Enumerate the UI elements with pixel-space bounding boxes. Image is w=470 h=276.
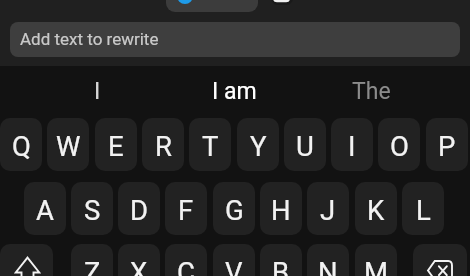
staticText: J	[320, 194, 336, 226]
button[interactable]: X	[118, 244, 160, 276]
button[interactable]: C	[165, 244, 207, 276]
staticText: C	[177, 256, 195, 276]
button[interactable]: M	[355, 244, 397, 276]
button[interactable]: D	[118, 182, 160, 235]
button[interactable]: The	[309, 65, 433, 117]
button[interactable]: I	[35, 65, 159, 117]
button[interactable]: I am	[172, 65, 296, 117]
staticText: Z	[84, 256, 101, 276]
staticText: Add text to rewrite	[20, 29, 159, 49]
staticText: G	[225, 194, 244, 226]
button[interactable]: K	[355, 182, 397, 235]
staticText: W	[56, 130, 81, 162]
staticText: N	[318, 256, 338, 276]
button[interactable]: E	[95, 118, 137, 171]
staticText: H	[271, 194, 291, 226]
staticText: L	[416, 194, 431, 226]
button[interactable]: J	[307, 182, 349, 235]
button[interactable]: A	[24, 182, 66, 235]
button[interactable]: L	[402, 182, 444, 235]
button[interactable]: S	[71, 182, 113, 235]
staticText: I am	[212, 78, 257, 105]
button[interactable]: More options	[271, 0, 293, 5]
staticText: E	[108, 130, 124, 162]
button[interactable]: T	[189, 118, 231, 171]
button[interactable]: G	[213, 182, 255, 235]
button[interactable]: N	[307, 244, 349, 276]
button[interactable]: W	[47, 118, 89, 171]
staticText: Y	[250, 130, 267, 162]
button[interactable]: U	[284, 118, 326, 171]
button[interactable]: Z	[71, 244, 113, 276]
button[interactable]: B	[260, 244, 302, 276]
button[interactable]: V	[213, 244, 255, 276]
staticText: M	[364, 256, 389, 276]
staticText: R	[155, 130, 172, 162]
staticText: T	[202, 130, 219, 162]
staticText: I	[94, 78, 101, 105]
button[interactable]: F	[165, 182, 207, 235]
staticText: B	[272, 256, 290, 276]
button[interactable]: H	[260, 182, 302, 235]
button[interactable]: R	[142, 118, 184, 171]
button[interactable]: P	[426, 118, 468, 171]
button[interactable]: Backspace	[413, 244, 467, 276]
staticText: U	[296, 130, 314, 162]
button[interactable]: O	[378, 118, 420, 171]
staticText: X	[130, 256, 148, 276]
staticText: S	[84, 194, 101, 226]
staticText: A	[36, 194, 54, 226]
staticText: The	[352, 78, 391, 105]
staticText: P	[438, 130, 456, 162]
button[interactable]: Shift	[0, 244, 53, 276]
button[interactable]: Q	[0, 118, 42, 171]
button[interactable]: Add text to rewrite	[10, 22, 460, 57]
staticText: O	[390, 130, 409, 162]
staticText: K	[367, 194, 385, 226]
staticText: I	[348, 130, 356, 162]
staticText: D	[130, 194, 149, 226]
button[interactable]: Y	[237, 118, 279, 171]
staticText: V	[225, 256, 243, 276]
button[interactable]: Rewrite style	[166, 0, 258, 12]
staticText: F	[178, 194, 194, 226]
staticText: Q	[12, 130, 31, 162]
button[interactable]: I	[331, 118, 373, 171]
